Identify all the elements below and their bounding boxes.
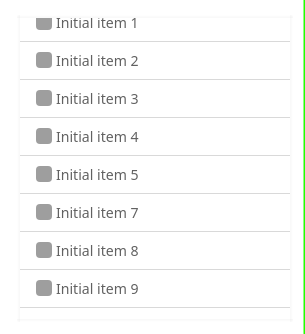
button[interactable]: Initial item 3 (20, 80, 290, 117)
staticText: Initial item 8 (56, 241, 139, 260)
button[interactable]: Initial item 9 (20, 270, 290, 307)
other: Scroll indicator (0, 0, 305, 334)
button[interactable]: Initial item 1 (20, 18, 290, 41)
staticText: Initial item 9 (56, 279, 139, 298)
button[interactable]: Initial item 2 (20, 42, 290, 79)
button[interactable]: Initial item 7 (20, 194, 290, 231)
staticText: Initial item 3 (56, 89, 139, 108)
staticText: Initial item 5 (56, 165, 139, 184)
staticText: Initial item 2 (56, 51, 139, 70)
staticText: Initial item 4 (56, 127, 139, 146)
staticText: Initial item 7 (56, 203, 139, 222)
button[interactable]: Initial item 8 (20, 232, 290, 269)
button[interactable]: Initial item 4 (20, 118, 290, 155)
staticText: Initial item 1 (56, 18, 139, 32)
button[interactable]: Initial item 5 (20, 156, 290, 193)
